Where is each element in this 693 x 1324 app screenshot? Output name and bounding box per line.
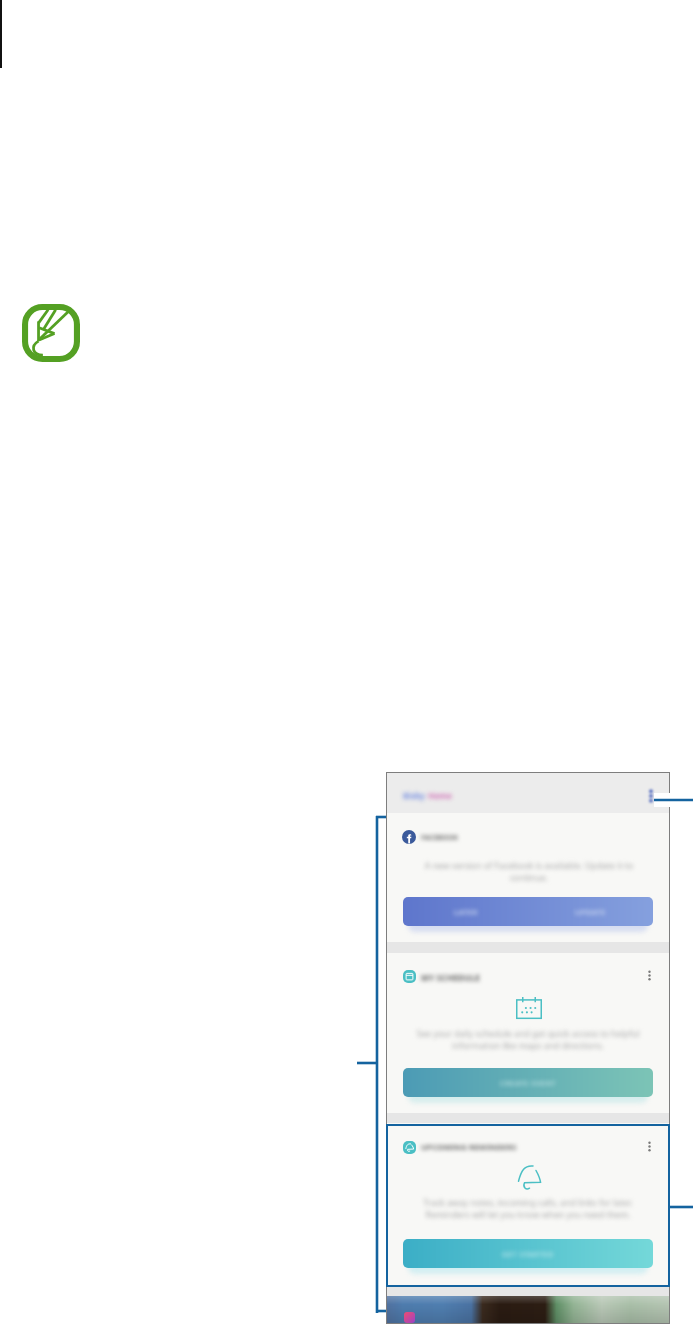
staticText: Bixby bbox=[403, 790, 425, 801]
staticText: UPDATE bbox=[575, 907, 606, 917]
staticText: Home bbox=[428, 790, 452, 801]
staticText: CREATE EVENT bbox=[500, 1078, 557, 1088]
staticText: Track away notes, incoming calls, and li… bbox=[407, 1197, 649, 1221]
button[interactable]: LATER bbox=[403, 897, 528, 926]
button[interactable]: GET STARTED bbox=[403, 1239, 653, 1268]
button[interactable]: More options bbox=[640, 785, 662, 807]
staticText: UPCOMING REMINDERS bbox=[421, 1142, 517, 1153]
staticText: MY SCHEDULE bbox=[421, 972, 481, 983]
staticText: GET STARTED bbox=[502, 1249, 554, 1259]
staticText: See your daily schedule and get quick ac… bbox=[402, 1028, 654, 1052]
staticText: FACEBOOK bbox=[421, 833, 459, 842]
button[interactable]: CREATE EVENT bbox=[403, 1068, 653, 1097]
staticText: A new version of Facebook is available. … bbox=[410, 860, 648, 884]
button[interactable]: Card options bbox=[640, 966, 658, 984]
staticText: LATER bbox=[454, 907, 478, 917]
button[interactable]: UPDATE bbox=[528, 897, 653, 926]
button[interactable]: Card options bbox=[640, 1137, 658, 1155]
